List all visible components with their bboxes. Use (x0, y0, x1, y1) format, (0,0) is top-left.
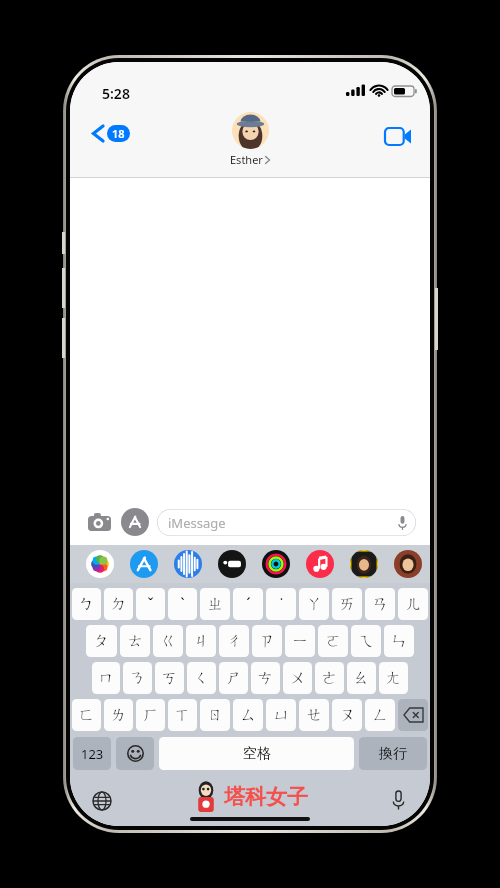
staticText: ㄊ (127, 631, 144, 651)
button[interactable]: Emoji (116, 737, 154, 770)
button[interactable]: ㄎ (155, 662, 184, 694)
staticText: ㄐ (193, 631, 210, 651)
staticText: ㄅ (78, 594, 95, 614)
staticText: ㄩ (273, 705, 290, 725)
staticText: ㄒ (174, 705, 191, 725)
button[interactable]: Backspace (398, 699, 428, 731)
button[interactable]: ㄞ (332, 588, 362, 620)
button[interactable]: iMessage app 3 (218, 550, 246, 578)
button[interactable]: ㄡ (332, 699, 362, 731)
button[interactable]: ˊ (233, 588, 263, 620)
button[interactable]: ㄒ (168, 699, 197, 731)
staticText: ˊ (246, 593, 251, 615)
button[interactable]: Switch keyboard (84, 783, 120, 819)
button[interactable]: ˙ (266, 588, 296, 620)
button[interactable]: ㄧ (285, 625, 315, 657)
button[interactable]: 換行 (359, 737, 427, 770)
button[interactable]: ㄥ (365, 699, 395, 731)
button[interactable]: ㄟ (351, 625, 381, 657)
button[interactable]: iMessage app 7 (394, 550, 422, 578)
staticText: ㄕ (225, 668, 242, 688)
staticText: ㄘ (257, 668, 274, 688)
staticText: ˋ (180, 593, 185, 615)
staticText: Esther (230, 152, 263, 167)
button[interactable]: ㄦ (398, 588, 428, 620)
button[interactable]: ㄖ (200, 699, 230, 731)
button[interactable]: iMessage (157, 509, 416, 536)
staticText: ㄓ (207, 594, 224, 614)
staticText: ㄠ (353, 668, 370, 688)
button[interactable]: ㄨ (283, 662, 312, 694)
button[interactable]: 空格 (159, 737, 354, 770)
staticText: ㄨ (289, 668, 306, 688)
staticText: ㄟ (358, 631, 375, 651)
button[interactable]: ㄢ (365, 588, 395, 620)
button[interactable]: ㄓ (200, 588, 230, 620)
button[interactable]: ㄗ (252, 625, 282, 657)
button[interactable]: Esther (230, 112, 270, 167)
button[interactable]: iMessage app 1 (130, 550, 158, 578)
staticText: 18 (112, 126, 125, 141)
button[interactable]: ㄕ (219, 662, 248, 694)
staticText: ㄉ (110, 594, 127, 614)
button[interactable]: iMessage app 4 (262, 550, 290, 578)
button[interactable]: ㄈ (72, 699, 101, 731)
button[interactable]: ㄋ (123, 662, 152, 694)
button[interactable]: ˋ (168, 588, 197, 620)
staticText: ㄛ (325, 631, 342, 651)
button[interactable]: ˇ (136, 588, 165, 620)
button[interactable]: ㄌ (104, 699, 133, 731)
staticText: iMessage (168, 514, 226, 532)
button[interactable]: ㄝ (299, 699, 329, 731)
staticText: ㄝ (306, 705, 323, 725)
button[interactable]: ㄙ (233, 699, 263, 731)
staticText: ㄜ (321, 668, 338, 688)
staticText: ㄢ (372, 594, 389, 614)
staticText: ㄥ (372, 705, 389, 725)
button[interactable]: ㄚ (299, 588, 329, 620)
button[interactable]: Back, 18 unread (88, 120, 134, 147)
staticText: ㄌ (110, 705, 127, 725)
button[interactable]: ㄉ (104, 588, 133, 620)
staticText: 5:28 (102, 84, 130, 103)
button[interactable]: ㄆ (86, 625, 117, 657)
staticText: ˇ (147, 593, 154, 615)
staticText: ㄋ (129, 668, 146, 688)
button[interactable]: ㄜ (315, 662, 344, 694)
staticText: ㄏ (142, 705, 159, 725)
staticText: ㄖ (207, 705, 224, 725)
button[interactable]: ㄏ (136, 699, 165, 731)
button[interactable]: ㄛ (318, 625, 348, 657)
button[interactable]: iMessage app 5 (306, 550, 334, 578)
button[interactable]: iMessage app 0 (86, 550, 114, 578)
staticText: ㄣ (391, 631, 408, 651)
button[interactable]: FaceTime video call (380, 118, 416, 154)
button[interactable]: ㄐ (186, 625, 216, 657)
button[interactable]: ㄣ (384, 625, 414, 657)
staticText: ㄧ (292, 631, 309, 651)
button[interactable]: ㄑ (187, 662, 216, 694)
staticText: 123 (81, 745, 104, 763)
button[interactable]: 123 (73, 737, 111, 770)
button[interactable]: iMessage app 2 (174, 550, 202, 578)
button[interactable]: ㄍ (153, 625, 183, 657)
staticText: ㄎ (161, 668, 178, 688)
button[interactable]: ㄔ (219, 625, 249, 657)
staticText: ㄍ (160, 631, 177, 651)
button[interactable]: Camera (84, 507, 114, 537)
button[interactable]: ㄠ (347, 662, 376, 694)
button[interactable]: iMessage app 6 (350, 550, 378, 578)
staticText: ㄞ (339, 594, 356, 614)
button[interactable]: ㄘ (251, 662, 280, 694)
button[interactable]: iMessage apps (121, 508, 149, 536)
button[interactable]: ㄤ (379, 662, 408, 694)
staticText: ㄔ (226, 631, 243, 651)
button[interactable]: ㄊ (120, 625, 150, 657)
button[interactable]: Dictation (380, 783, 416, 819)
staticText: ㄇ (98, 668, 115, 688)
staticText: 塔科女子 (224, 784, 308, 810)
button[interactable]: ㄩ (266, 699, 296, 731)
button[interactable]: ㄅ (72, 588, 101, 620)
button[interactable]: ㄇ (92, 662, 120, 694)
staticText: ㄦ (405, 594, 422, 614)
